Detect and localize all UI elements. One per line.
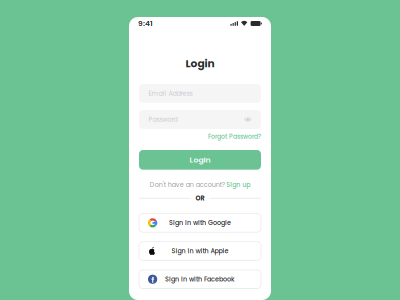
staticText: Don't have an account? [150,180,225,189]
staticText: Sign up [226,180,250,189]
button[interactable]: Sign up [226,180,250,189]
button[interactable]: Forgot Password? [208,132,261,141]
staticText: OR [195,194,204,203]
button[interactable]: Sign in with Apple [139,242,261,260]
staticText: 9:41 [138,18,153,29]
staticText: Email Address [148,89,192,98]
staticText: Login [189,154,210,165]
staticText: Password [148,115,177,124]
staticText: Sign in with Facebook [165,275,235,284]
staticText: Login [185,56,214,71]
button[interactable]: Login [139,150,261,170]
staticText: Sign in with Google [169,218,231,227]
button[interactable]: Sign in with Facebook [139,270,261,289]
staticText: Sign in with Apple [171,247,228,256]
button[interactable]: Sign in with Google [139,213,261,232]
staticText: Forgot Password? [208,132,261,141]
